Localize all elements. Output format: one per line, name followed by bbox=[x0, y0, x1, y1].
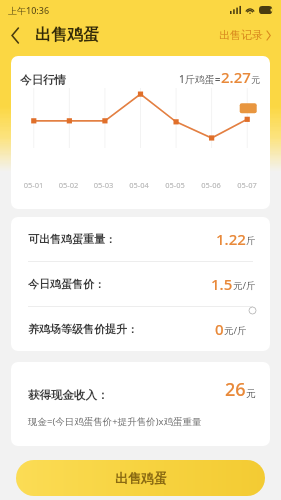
staticText: 元/斤 bbox=[233, 279, 256, 292]
staticText: 1斤鸡蛋= bbox=[179, 72, 221, 86]
staticText: 元 bbox=[246, 387, 256, 400]
staticText: 05-03 bbox=[86, 180, 121, 190]
staticText: 出售鸡蛋 bbox=[35, 25, 99, 45]
staticText: 获得现金收入： bbox=[28, 388, 109, 402]
staticText: 05-07 bbox=[229, 180, 265, 190]
staticText: 05-06 bbox=[193, 180, 229, 190]
staticText: 出售记录 bbox=[219, 28, 263, 42]
staticText: 1.22 bbox=[216, 229, 246, 249]
button[interactable]: 养鸡场等级售价提升： bbox=[11, 307, 270, 351]
staticText: 今日行情 bbox=[20, 73, 66, 87]
staticText: 养鸡场等级售价提升： bbox=[28, 322, 138, 336]
staticText: 26 bbox=[225, 377, 246, 402]
other: Help bbox=[249, 307, 256, 314]
staticText: 05-01 bbox=[16, 180, 51, 190]
staticText: 05-05 bbox=[157, 180, 193, 190]
staticText: 2.27 bbox=[221, 67, 251, 87]
staticText: 今日鸡蛋售价： bbox=[28, 277, 105, 291]
button[interactable]: Back bbox=[0, 20, 30, 50]
button[interactable]: 出售鸡蛋 bbox=[16, 460, 265, 496]
staticText: 1.5 bbox=[211, 274, 233, 294]
staticText: 斤 bbox=[246, 235, 256, 247]
staticText: 05-04 bbox=[121, 180, 157, 190]
staticText: 05-02 bbox=[51, 180, 86, 190]
staticText: 元 bbox=[251, 74, 260, 85]
button[interactable]: 今日鸡蛋售价： bbox=[11, 262, 270, 306]
staticText: 现金=(今日鸡蛋售价+提升售价)x鸡蛋重量 bbox=[28, 415, 202, 428]
button[interactable]: 出售记录 bbox=[217, 24, 273, 46]
staticText: 出售鸡蛋 bbox=[115, 470, 167, 486]
staticText: 0 bbox=[215, 319, 224, 339]
button[interactable]: 可出售鸡蛋重量： bbox=[11, 217, 270, 261]
staticText: 可出售鸡蛋重量： bbox=[28, 232, 116, 246]
staticText: 元/斤 bbox=[224, 324, 247, 337]
staticText: 上午10:36 bbox=[8, 4, 50, 16]
